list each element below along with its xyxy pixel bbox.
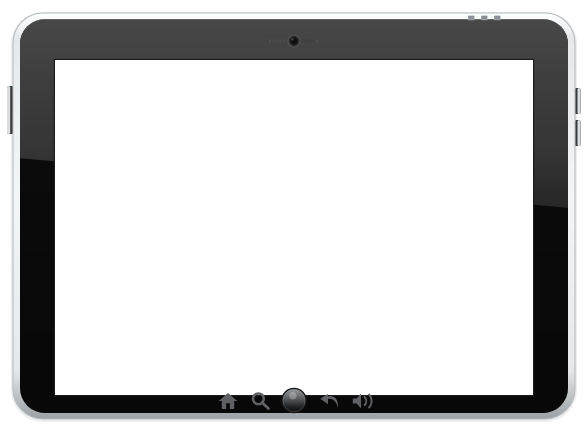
button[interactable]: Back <box>320 392 340 410</box>
button[interactable]: Search <box>250 392 270 410</box>
button[interactable]: Home button <box>281 388 307 413</box>
button[interactable]: Home <box>218 392 238 410</box>
button[interactable]: Volume <box>352 392 372 410</box>
